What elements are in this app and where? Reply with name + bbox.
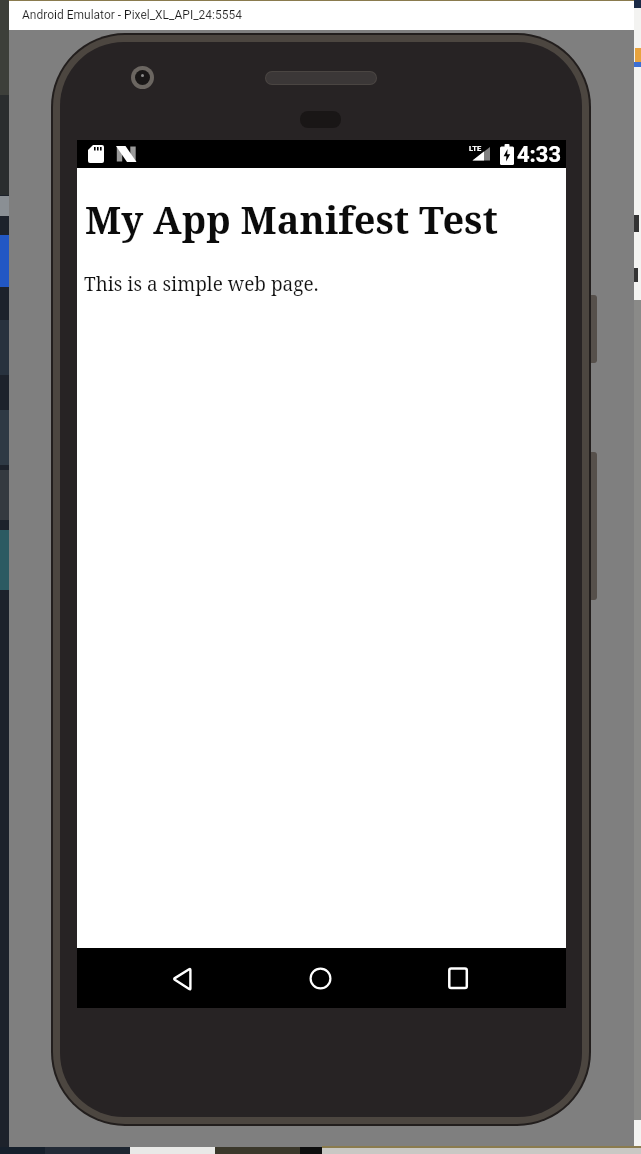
staticText: LTE xyxy=(469,144,482,153)
staticText: This is a simple web page. xyxy=(84,271,319,297)
staticText: Android Emulator - Pixel_XL_API_24:5554 xyxy=(22,8,242,22)
staticText: My App Manifest Test xyxy=(85,193,498,245)
button[interactable] xyxy=(162,958,202,999)
button[interactable] xyxy=(300,958,340,999)
staticText: 4:33 xyxy=(517,142,562,168)
button[interactable] xyxy=(438,958,478,999)
